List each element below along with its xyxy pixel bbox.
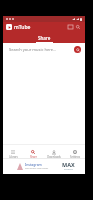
button[interactable]: Downloads bbox=[43, 144, 64, 158]
staticText: MAX bbox=[62, 161, 75, 168]
button[interactable]: Library bbox=[3, 144, 23, 158]
staticText: Settings bbox=[70, 155, 80, 158]
button[interactable]: Instagram bbox=[3, 158, 85, 174]
button[interactable]: Share bbox=[23, 144, 43, 158]
staticText: Share bbox=[30, 155, 37, 158]
staticText: Share bbox=[38, 35, 51, 41]
staticText: Library bbox=[9, 155, 18, 158]
button[interactable]: Search bbox=[74, 46, 81, 53]
button[interactable]: Cast bbox=[67, 23, 73, 31]
staticText: See what's new today bbox=[25, 167, 49, 170]
button[interactable]: Settings bbox=[64, 144, 85, 158]
staticText: mTube bbox=[14, 24, 31, 31]
staticText: STUDIOS bbox=[64, 168, 73, 171]
button[interactable]: Share bbox=[3, 32, 85, 43]
staticText: Instagram bbox=[25, 162, 42, 167]
staticText: Search your music here... bbox=[9, 47, 57, 52]
staticText: Downloads bbox=[47, 155, 61, 158]
button[interactable]: Search bbox=[75, 23, 81, 31]
